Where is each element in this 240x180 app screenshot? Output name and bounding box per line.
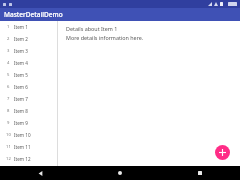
button[interactable]: 6 xyxy=(0,81,57,93)
button[interactable]: 1 xyxy=(0,21,57,33)
staticText: 8 xyxy=(7,108,10,114)
staticText: 3 xyxy=(7,48,10,54)
button[interactable]: 11 xyxy=(0,141,57,153)
staticText: More details information here. xyxy=(66,34,144,41)
staticText: 1 xyxy=(7,24,10,30)
button[interactable]: Add item xyxy=(215,145,230,160)
button[interactable]: Back xyxy=(0,166,80,180)
staticText: 7 xyxy=(7,96,10,102)
staticText: Item 1 xyxy=(14,24,28,30)
staticText: 6 xyxy=(7,84,10,90)
staticText: Item 9 xyxy=(14,120,28,126)
button[interactable]: 4 xyxy=(0,57,57,69)
staticText: MasterDetailDemo xyxy=(4,10,63,19)
button[interactable]: 3 xyxy=(0,45,57,57)
button[interactable]: Recents xyxy=(160,166,240,180)
staticText: Item 11 xyxy=(14,144,31,150)
staticText: Item 4 xyxy=(14,60,28,66)
button[interactable]: 7 xyxy=(0,93,57,105)
staticText: Item 5 xyxy=(14,72,28,78)
staticText: Item 10 xyxy=(14,132,31,138)
button[interactable]: 2 xyxy=(0,33,57,45)
button[interactable]: 10 xyxy=(0,129,57,141)
staticText: Item 7 xyxy=(14,96,28,102)
staticText: Item 12 xyxy=(14,156,31,162)
staticText: 4 xyxy=(7,60,10,66)
button[interactable]: 5 xyxy=(0,69,57,81)
staticText: 5 xyxy=(7,72,10,78)
staticText: 10 xyxy=(6,132,11,138)
button[interactable]: 9 xyxy=(0,117,57,129)
button[interactable]: 12 xyxy=(0,153,57,165)
staticText: Item 3 xyxy=(14,48,28,54)
staticText: 2 xyxy=(7,36,10,42)
staticText: Item 8 xyxy=(14,108,28,114)
staticText: Details about Item 1 xyxy=(66,25,118,32)
staticText: Item 2 xyxy=(14,36,28,42)
staticText: 12 xyxy=(6,156,11,162)
staticText: Item 6 xyxy=(14,84,28,90)
button[interactable]: Home xyxy=(80,166,160,180)
button[interactable]: 8 xyxy=(0,105,57,117)
staticText: 9 xyxy=(7,120,10,126)
staticText: 11 xyxy=(6,144,11,150)
